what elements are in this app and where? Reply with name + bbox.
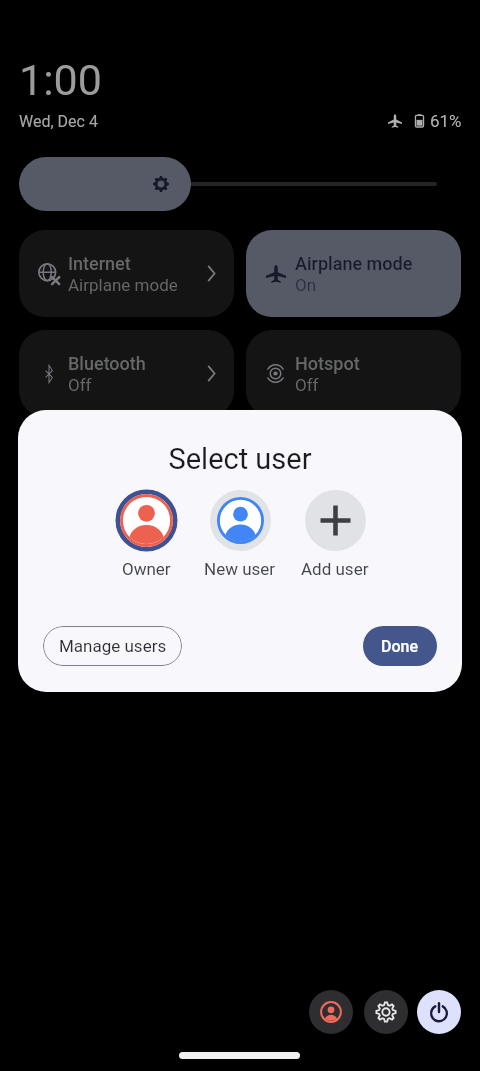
button[interactable]: Owner [99, 490, 193, 579]
button[interactable]: Hotspot [246, 330, 461, 417]
staticText: Add user [301, 559, 369, 579]
staticText: Hotspot [295, 353, 360, 374]
button[interactable]: Internet [19, 230, 234, 317]
staticText: 61% [430, 111, 462, 131]
staticText: Airplane mode [68, 275, 178, 295]
button[interactable]: Current user [309, 990, 353, 1034]
button[interactable]: Power [417, 990, 461, 1034]
staticText: Wed, Dec 4 [19, 112, 98, 131]
staticText: New user [204, 559, 276, 579]
button[interactable]: Airplane mode [246, 230, 461, 317]
staticText: 1:00 [19, 55, 102, 105]
button[interactable]: New user [193, 490, 287, 579]
button[interactable]: Add user [288, 490, 382, 579]
staticText: Manage users [59, 636, 167, 656]
button[interactable]: Settings [364, 990, 408, 1034]
staticText: Airplane mode [295, 253, 413, 274]
staticText: Done [381, 637, 419, 656]
staticText: Off [295, 375, 319, 395]
staticText: Internet [68, 253, 131, 274]
button[interactable]: Bluetooth [19, 330, 234, 417]
staticText: Bluetooth [68, 353, 146, 374]
staticText: Owner [122, 559, 171, 579]
staticText: On [295, 275, 317, 295]
button[interactable] [19, 157, 461, 211]
staticText: Off [68, 375, 92, 395]
staticText: Select user [168, 442, 312, 476]
button[interactable]: Manage users [43, 626, 182, 666]
button[interactable]: Done [363, 626, 437, 666]
